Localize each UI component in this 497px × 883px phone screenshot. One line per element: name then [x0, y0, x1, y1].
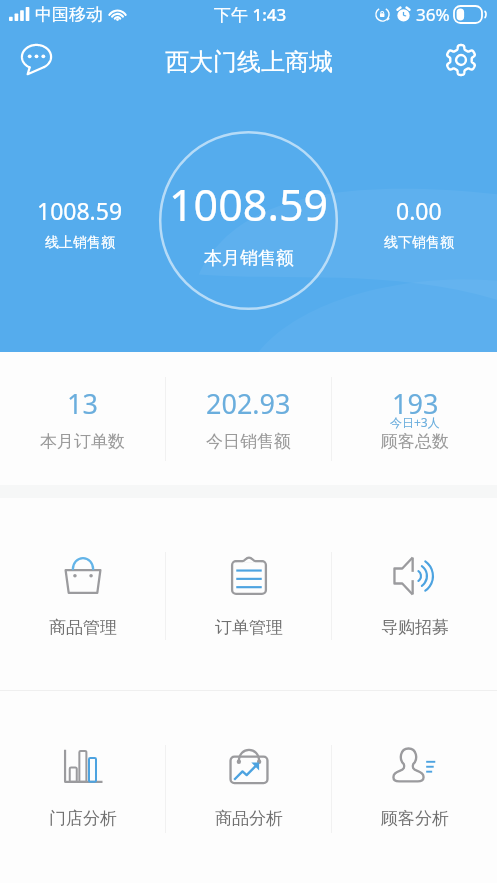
button[interactable]: Messages [12, 35, 60, 83]
staticText: 商品管理 [49, 617, 117, 638]
staticText: 顾客分析 [381, 808, 449, 829]
staticText: 线上销售额 [45, 234, 115, 252]
staticText: 202.93 [206, 385, 291, 422]
staticText: 今日+3人 [390, 414, 440, 430]
staticText: 商品分析 [215, 808, 283, 829]
staticText: 36% [416, 3, 450, 26]
staticText: 中国移动 [35, 4, 103, 25]
button[interactable]: 门店分析 [0, 689, 165, 881]
staticText: 今日销售额 [206, 431, 291, 452]
button[interactable]: 202.93 [166, 352, 331, 485]
button[interactable]: 商品分析 [166, 689, 331, 881]
staticText: 0.00 [396, 195, 442, 226]
staticText: 线下销售额 [384, 234, 454, 252]
staticText: 本月订单数 [40, 431, 125, 452]
button[interactable]: 13 [0, 352, 165, 485]
staticText: 本月销售额 [204, 247, 294, 270]
button[interactable]: 193 [332, 352, 497, 485]
staticText: 1008.59 [169, 175, 329, 234]
button[interactable]: 顾客分析 [332, 689, 497, 881]
staticText: 导购招募 [381, 617, 449, 638]
staticText: 下午 1:43 [214, 3, 287, 26]
staticText: 西大门线上商城 [165, 47, 333, 77]
staticText: 13 [67, 385, 98, 422]
button[interactable]: Settings [437, 36, 485, 84]
button[interactable]: 商品管理 [0, 498, 165, 690]
staticText: 顾客总数 [381, 431, 449, 452]
staticText: 1008.59 [37, 195, 123, 226]
staticText: 193 [392, 385, 439, 422]
staticText: 门店分析 [49, 808, 117, 829]
button[interactable]: 订单管理 [166, 498, 331, 690]
staticText: 订单管理 [215, 617, 283, 638]
button[interactable]: 导购招募 [332, 498, 497, 690]
